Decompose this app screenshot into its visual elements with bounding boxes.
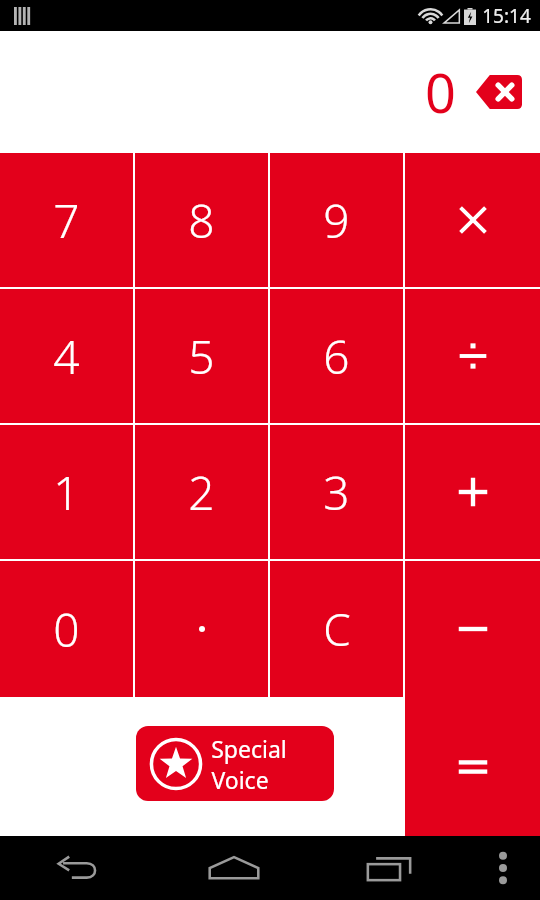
- button[interactable]: Special: [136, 726, 334, 801]
- button[interactable]: [405, 425, 540, 559]
- button[interactable]: Recent apps: [311, 836, 466, 900]
- button[interactable]: 2: [135, 425, 268, 559]
- button[interactable]: 3: [270, 425, 403, 559]
- button[interactable]: 5: [135, 289, 268, 423]
- button[interactable]: [405, 561, 540, 697]
- button[interactable]: 1: [0, 425, 133, 559]
- button[interactable]: More options: [466, 836, 540, 900]
- staticText: 15:14: [482, 3, 531, 29]
- button[interactable]: [405, 153, 540, 287]
- button[interactable]: Back: [0, 836, 156, 900]
- button[interactable]: Backspace: [476, 75, 522, 109]
- staticText: C: [323, 599, 351, 659]
- staticText: 6: [323, 325, 350, 388]
- staticText: 0: [53, 598, 80, 661]
- button[interactable]: 6: [270, 289, 403, 423]
- button[interactable]: [135, 561, 268, 697]
- staticText: Voice: [211, 764, 269, 795]
- staticText: 0: [425, 55, 456, 129]
- button[interactable]: C: [270, 561, 403, 697]
- button[interactable]: 0: [0, 561, 133, 697]
- button[interactable]: 4: [0, 289, 133, 423]
- staticText: 7: [53, 189, 80, 252]
- staticText: 9: [323, 189, 350, 252]
- staticText: 3: [323, 461, 350, 524]
- staticText: Special: [211, 733, 287, 764]
- button[interactable]: Equals: [405, 697, 540, 836]
- button[interactable]: Home: [156, 836, 311, 900]
- button[interactable]: 8: [135, 153, 268, 287]
- staticText: 1: [53, 461, 80, 524]
- staticText: 2: [188, 461, 215, 524]
- staticText: 8: [188, 189, 215, 252]
- staticText: 4: [53, 325, 80, 388]
- button[interactable]: [405, 289, 540, 423]
- staticText: 5: [188, 325, 215, 388]
- button[interactable]: 7: [0, 153, 133, 287]
- button[interactable]: 9: [270, 153, 403, 287]
